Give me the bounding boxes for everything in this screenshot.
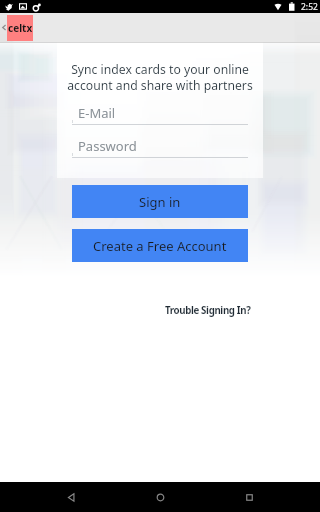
- staticText: Create a Free Account: [93, 237, 227, 255]
- button[interactable]: Trouble Signing In?: [163, 302, 253, 319]
- button[interactable]: celtx: [7, 15, 33, 41]
- button[interactable]: Navigate up: [0, 13, 8, 42]
- button[interactable]: Back: [53, 482, 89, 512]
- button[interactable]: Home: [142, 482, 178, 512]
- button[interactable]: Recent apps: [231, 482, 267, 512]
- button[interactable]: Password: [72, 136, 248, 158]
- staticText: Sync index cards to your online account …: [0, 61, 320, 93]
- button[interactable]: Create a Free Account: [72, 229, 248, 262]
- staticText: E-Mail: [78, 104, 116, 122]
- button[interactable]: Sign in: [72, 185, 248, 218]
- staticText: Password: [78, 137, 137, 155]
- staticText: Sign in: [139, 193, 181, 211]
- button[interactable]: E-Mail: [72, 103, 248, 125]
- staticText: celtx: [8, 21, 33, 35]
- staticText: Trouble Signing In?: [165, 304, 251, 317]
- staticText: 2:52: [301, 1, 318, 13]
